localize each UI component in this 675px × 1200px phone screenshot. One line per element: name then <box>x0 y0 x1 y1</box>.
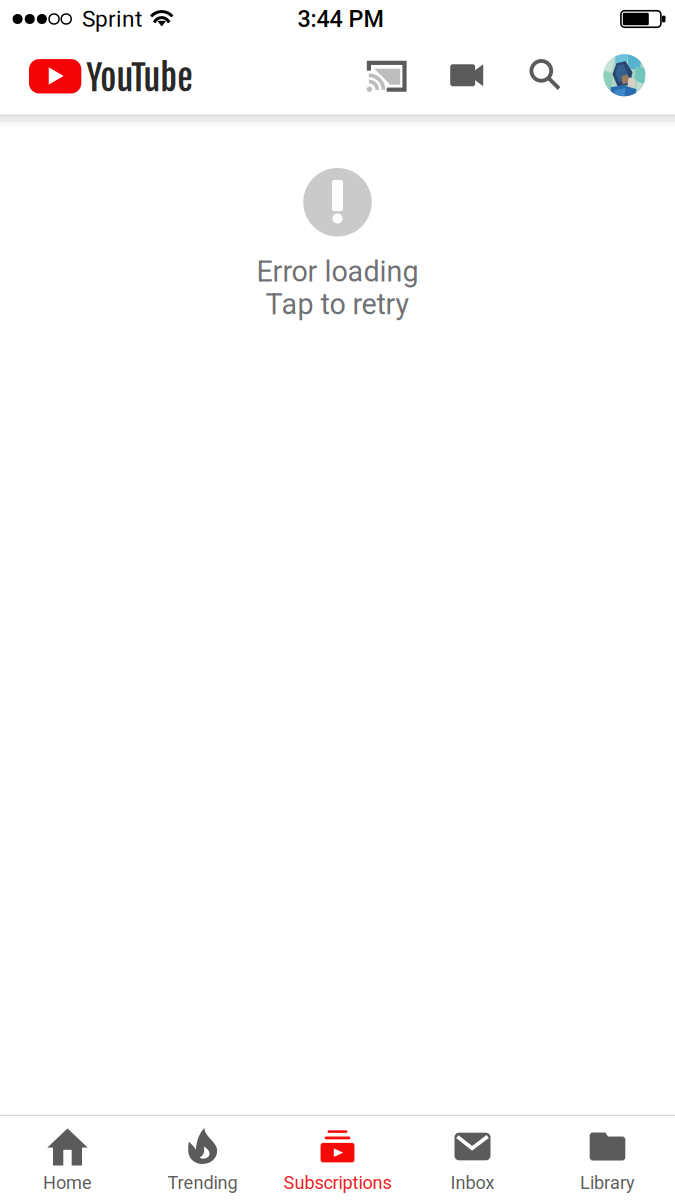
button[interactable]: Search <box>505 38 585 114</box>
button[interactable]: YouTube <box>0 38 208 114</box>
button[interactable]: Trending <box>135 1116 270 1200</box>
staticText: Sprint <box>82 6 142 32</box>
button[interactable]: Account <box>585 38 664 114</box>
staticText: Trending <box>167 1172 237 1193</box>
staticText: Home <box>43 1172 92 1193</box>
button[interactable]: Cast <box>346 38 426 114</box>
button[interactable]: Create <box>426 38 505 114</box>
staticText: Tap to retry <box>265 288 409 321</box>
staticText: Error loading <box>256 255 418 288</box>
staticText: 3:44 PM <box>297 5 383 33</box>
staticText: Library <box>580 1172 635 1193</box>
button[interactable]: Home <box>0 1116 135 1200</box>
staticText: YouTube <box>86 56 192 100</box>
button[interactable]: Subscriptions <box>270 1116 405 1200</box>
staticText: Subscriptions <box>283 1172 391 1193</box>
staticText: Inbox <box>450 1172 494 1193</box>
button[interactable]: Library <box>540 1116 675 1200</box>
button[interactable]: Error loading <box>256 168 418 321</box>
button[interactable]: Inbox <box>405 1116 540 1200</box>
